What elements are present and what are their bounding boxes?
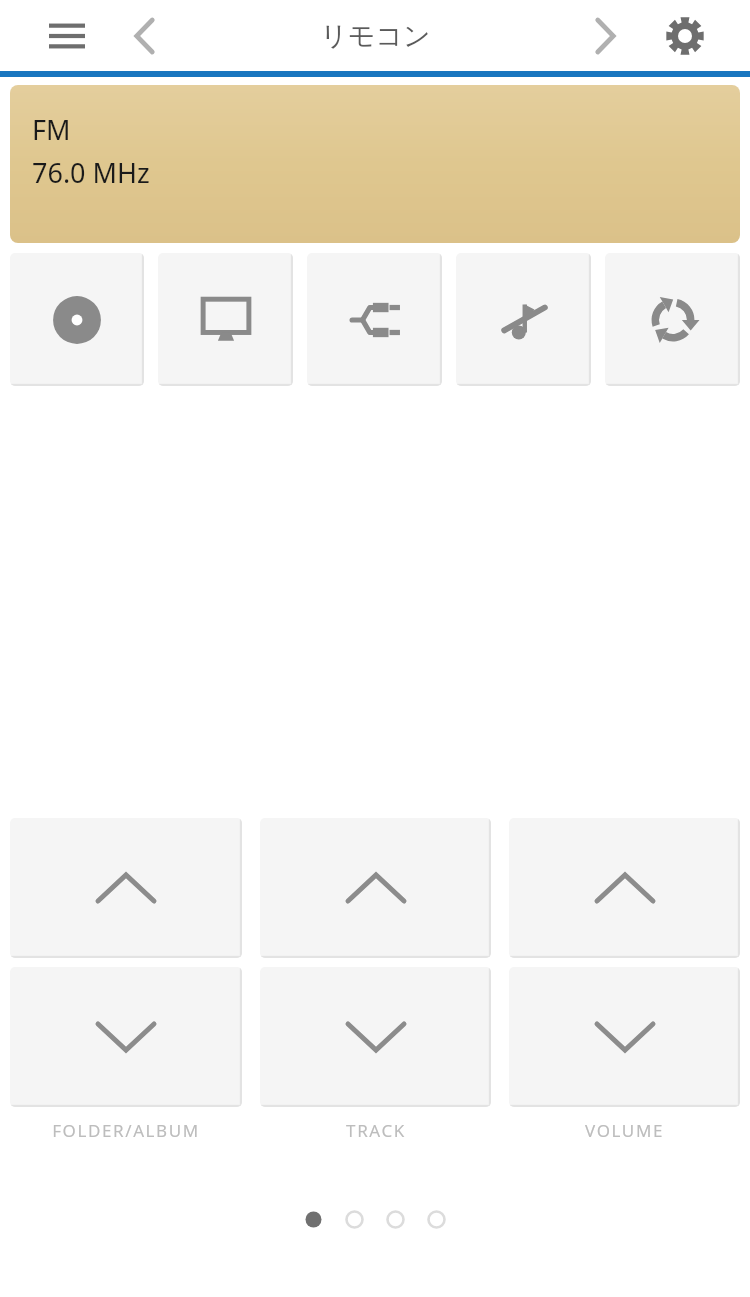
button[interactable]: TRACK down [260,967,491,1107]
button[interactable]: Repeat [605,253,740,386]
button[interactable]: AUX input [307,253,442,386]
button[interactable]: VOLUME up [509,818,740,958]
button[interactable]: Disc [10,253,144,386]
button[interactable]: Display [158,253,293,386]
button[interactable]: VOLUME down [509,967,740,1107]
staticText: VOLUME [585,1119,664,1142]
button[interactable]: Settings [656,7,714,65]
button[interactable]: FOLDER/ALBUM up [10,818,242,958]
staticText: リモコン [320,19,431,53]
button[interactable]: Mute [456,253,591,386]
button[interactable]: FM [10,85,740,243]
button[interactable]: Next [576,7,634,65]
staticText: FM [32,111,71,148]
button[interactable]: TRACK up [260,818,491,958]
button[interactable]: Previous [116,7,174,65]
staticText: 76.0 MHz [32,154,150,191]
staticText: TRACK [346,1119,406,1142]
staticText: FOLDER/ALBUM [52,1119,200,1142]
button[interactable]: FOLDER/ALBUM down [10,967,242,1107]
button[interactable]: Menu [38,7,96,65]
